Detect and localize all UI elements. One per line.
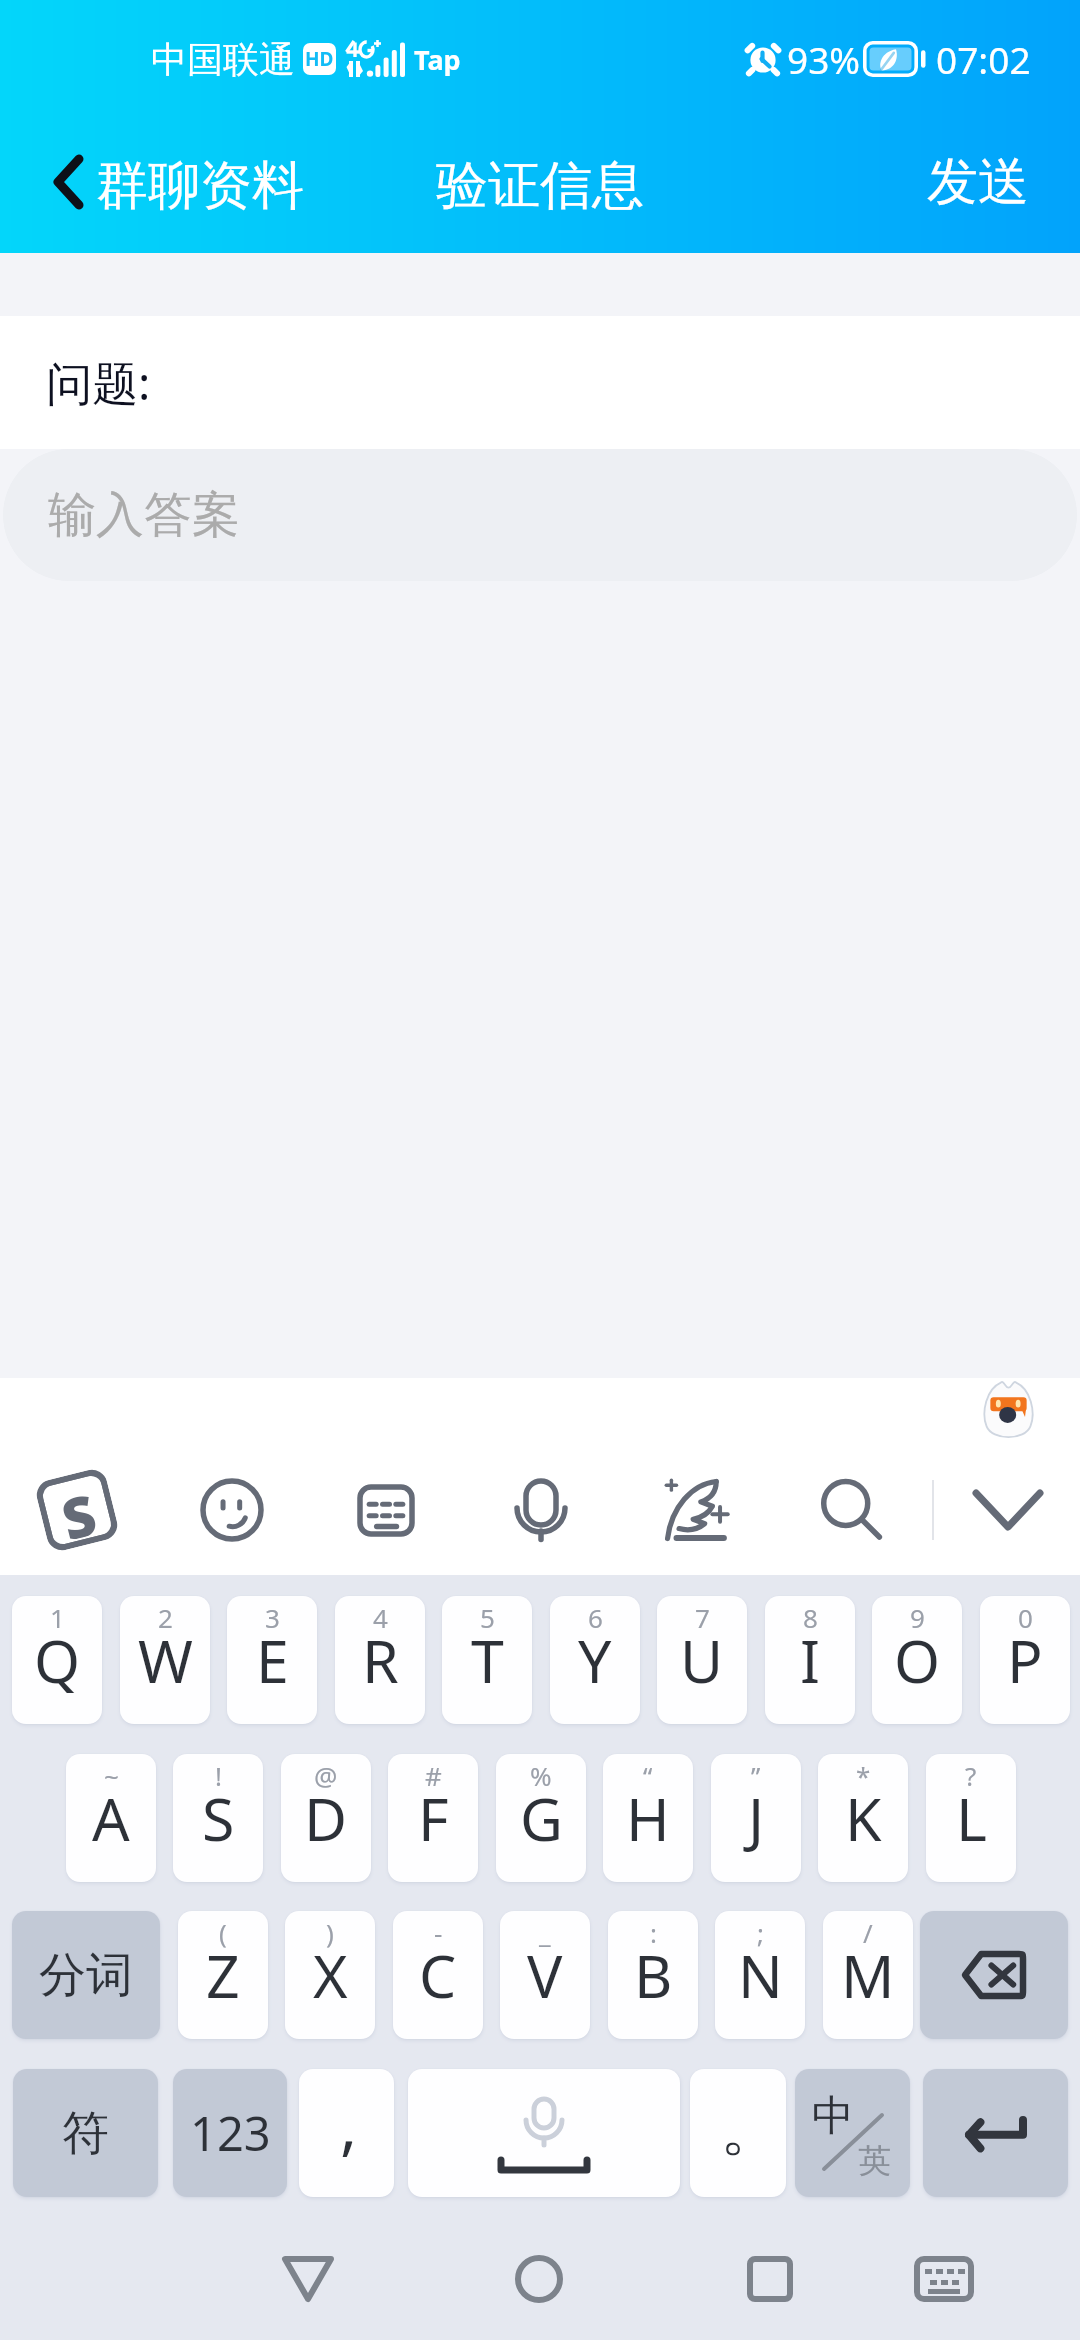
staticText: R: [362, 1620, 399, 1700]
staticText: 中: [812, 2090, 854, 2143]
button[interactable]: ;: [715, 1911, 805, 2039]
button[interactable]: ,: [299, 2069, 394, 2197]
staticText: :: [650, 1915, 657, 1950]
staticText: 4: [373, 1600, 388, 1635]
button[interactable]: 群聊资料: [0, 118, 330, 253]
staticText: F: [418, 1778, 449, 1858]
staticText: 93%: [787, 34, 861, 84]
staticText: I: [800, 1620, 821, 1700]
staticText: -: [434, 1915, 443, 1950]
staticText: 0: [1018, 1600, 1033, 1635]
button[interactable]: 输入答案: [3, 449, 1077, 581]
button[interactable]: 4: [335, 1596, 425, 1724]
staticText: 英: [858, 2140, 891, 2182]
button[interactable]: 6: [550, 1596, 640, 1724]
staticText: ): [326, 1915, 334, 1950]
staticText: A: [92, 1778, 130, 1858]
button[interactable]: Search: [777, 1436, 925, 1584]
button[interactable]: 3: [227, 1596, 317, 1724]
button[interactable]: Recent apps: [710, 2219, 830, 2339]
button[interactable]: 123: [173, 2069, 287, 2197]
staticText: S: [54, 1477, 100, 1541]
staticText: ~: [104, 1758, 119, 1793]
button[interactable]: Hide keyboard: [884, 2219, 1004, 2339]
button[interactable]: ): [285, 1911, 375, 2039]
button[interactable]: 5: [442, 1596, 532, 1724]
button[interactable]: ?: [926, 1754, 1016, 1882]
button[interactable]: -: [393, 1911, 483, 2039]
staticText: 5: [480, 1600, 495, 1635]
button[interactable]: Home: [479, 2219, 599, 2339]
button[interactable]: Voice input: [467, 1436, 615, 1584]
button[interactable]: Collapse keyboard: [936, 1438, 1080, 1582]
button[interactable]: /: [823, 1911, 913, 2039]
button[interactable]: (: [178, 1911, 268, 2039]
button[interactable]: ”: [711, 1754, 801, 1882]
button[interactable]: 2: [120, 1596, 210, 1724]
staticText: D: [304, 1778, 348, 1858]
button[interactable]: !: [173, 1754, 263, 1882]
staticText: Q: [34, 1620, 81, 1700]
button[interactable]: %: [496, 1754, 586, 1882]
button[interactable]: Space: [408, 2069, 680, 2197]
staticText: *: [856, 1758, 871, 1793]
staticText: 2: [158, 1600, 173, 1635]
staticText: B: [634, 1935, 673, 2015]
staticText: 7: [695, 1600, 710, 1635]
button[interactable]: 问题:: [0, 316, 1080, 449]
staticText: !: [215, 1758, 222, 1793]
button[interactable]: 发送: [887, 118, 1080, 253]
staticText: ,: [340, 2081, 358, 2168]
staticText: 。: [720, 2089, 782, 2167]
button[interactable]: “: [603, 1754, 693, 1882]
button[interactable]: *: [818, 1754, 908, 1882]
button[interactable]: 符: [13, 2069, 158, 2197]
button[interactable]: @: [281, 1754, 371, 1882]
staticText: O: [894, 1620, 941, 1700]
staticText: ;: [757, 1915, 764, 1950]
button[interactable]: :: [608, 1911, 698, 2039]
button[interactable]: 。: [690, 2069, 786, 2197]
button[interactable]: Assistant: [981, 1380, 1036, 1444]
staticText: C: [419, 1935, 457, 2015]
staticText: 符: [62, 2104, 109, 2163]
button[interactable]: 7: [657, 1596, 747, 1724]
button[interactable]: ~: [66, 1754, 156, 1882]
button[interactable]: Back: [248, 2219, 368, 2339]
staticText: Y: [578, 1620, 612, 1700]
staticText: E: [256, 1620, 289, 1700]
staticText: 9: [910, 1600, 925, 1635]
staticText: 8: [803, 1600, 818, 1635]
button[interactable]: 9: [872, 1596, 962, 1724]
staticText: L: [956, 1778, 987, 1858]
button[interactable]: Chinese English toggle: [795, 2069, 910, 2197]
staticText: /: [863, 1915, 873, 1950]
button[interactable]: 分词: [12, 1911, 160, 2039]
button[interactable]: Backspace: [920, 1911, 1068, 2039]
staticText: 发送: [927, 150, 1029, 214]
button[interactable]: _: [500, 1911, 590, 2039]
staticText: S: [202, 1778, 235, 1858]
staticText: J: [748, 1778, 765, 1858]
staticText: (: [219, 1915, 227, 1950]
staticText: @: [314, 1758, 338, 1793]
button[interactable]: 8: [765, 1596, 855, 1724]
staticText: 07:02: [936, 34, 1031, 84]
staticText: 123: [190, 2101, 271, 2165]
button[interactable]: #: [388, 1754, 478, 1882]
button[interactable]: Keyboard layout: [312, 1436, 460, 1584]
button[interactable]: Enter: [923, 2069, 1068, 2197]
staticText: T: [471, 1620, 504, 1700]
staticText: #: [425, 1758, 442, 1793]
staticText: ”: [751, 1758, 761, 1793]
staticText: _: [539, 1915, 551, 1950]
staticText: X: [313, 1935, 348, 2015]
staticText: 6: [588, 1600, 603, 1635]
button[interactable]: Handwriting: [623, 1436, 771, 1584]
staticText: 分词: [39, 1946, 133, 2005]
button[interactable]: Emoji: [158, 1436, 306, 1584]
button[interactable]: 1: [12, 1596, 102, 1724]
staticText: 输入答案: [48, 485, 240, 545]
button[interactable]: 0: [980, 1596, 1070, 1724]
button[interactable]: Sogou input: [3, 1436, 151, 1584]
